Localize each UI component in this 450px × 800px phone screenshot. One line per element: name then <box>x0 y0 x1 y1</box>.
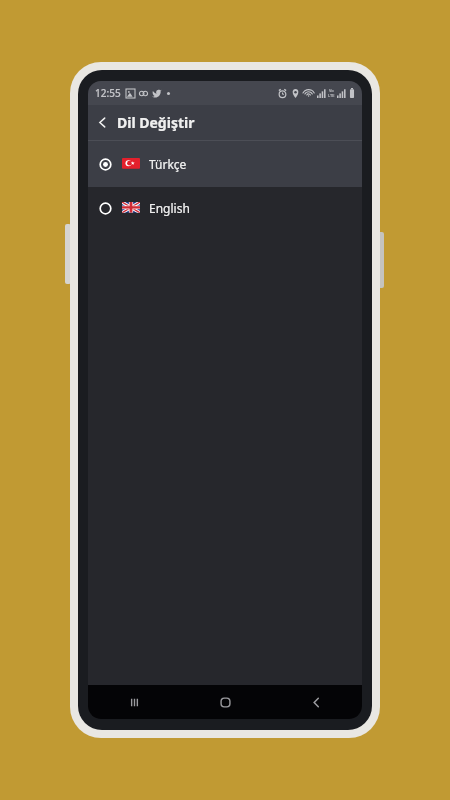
button[interactable]: Home <box>180 685 271 719</box>
staticText: LTE <box>328 93 335 98</box>
button[interactable]: Back <box>88 108 117 137</box>
staticText: Dil Değiştir <box>117 113 195 132</box>
button[interactable]: English <box>88 187 362 229</box>
button[interactable]: Back <box>271 685 362 719</box>
staticText: Türkçe <box>149 156 187 172</box>
staticText: English <box>149 200 190 216</box>
staticText: 12:55 <box>95 86 121 100</box>
button[interactable]: Recents <box>88 685 180 719</box>
button[interactable]: Türkçe <box>88 141 362 187</box>
staticText: Vo <box>329 88 334 93</box>
